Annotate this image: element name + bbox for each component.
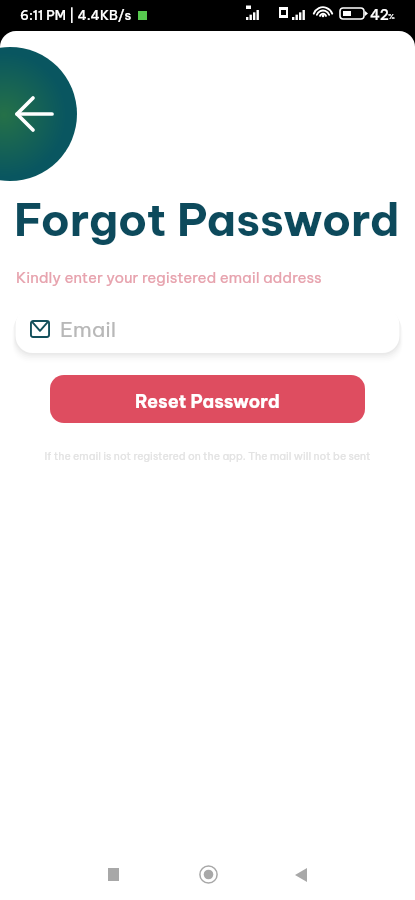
button[interactable]: Home — [184, 850, 233, 899]
button[interactable]: Recents — [89, 850, 138, 899]
staticText: 42 — [370, 6, 389, 24]
staticText: % — [388, 11, 395, 21]
staticText: 6:11 PM | 4.4KB/s — [20, 7, 132, 23]
button[interactable]: Back — [276, 850, 325, 899]
staticText: Forgot Password — [14, 191, 400, 248]
staticText: Reset Password — [135, 390, 280, 413]
button[interactable]: Reset Password — [50, 375, 365, 423]
button[interactable]: Email — [16, 308, 400, 353]
staticText: Email — [60, 316, 117, 343]
staticText: Kindly enter your registered email addre… — [16, 268, 322, 287]
staticText: If the email is not registered on the ap… — [0, 449, 415, 462]
button[interactable]: Back — [0, 47, 77, 181]
